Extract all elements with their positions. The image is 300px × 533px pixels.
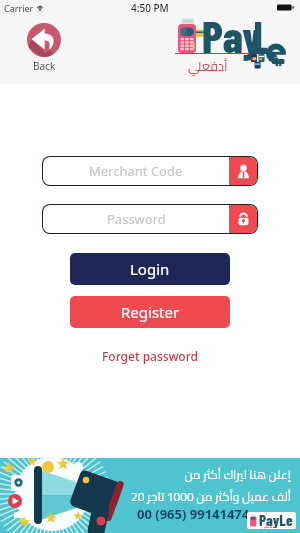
staticText: Pay [202, 9, 262, 62]
staticText: Back [33, 59, 56, 73]
button[interactable]: Forget password [96, 346, 204, 366]
staticText: أدفعلي [188, 54, 228, 78]
button[interactable]: Register [70, 296, 230, 328]
staticText: Carrier [4, 2, 34, 14]
staticText: 20 ألف عميل وأكثر من 1000 تاجر [131, 485, 291, 507]
button[interactable]: Login [70, 253, 230, 285]
button[interactable]: Advertisement banner [0, 458, 300, 533]
staticText: أدفعلي [261, 521, 277, 529]
staticText: 4:50 PM [131, 1, 169, 15]
staticText: Password [107, 210, 166, 228]
button[interactable]: Password [42, 204, 259, 235]
staticText: Register [121, 302, 180, 322]
staticText: 00 (965) 99141474 [137, 505, 250, 523]
staticText: Forget password [102, 348, 198, 364]
staticText: إعلن هنا ليراك أكثر من [184, 463, 291, 485]
staticText: Merchant Code [89, 162, 183, 180]
button[interactable]: Merchant Code [42, 156, 259, 187]
button[interactable]: Back [22, 21, 66, 75]
staticText: PayLe [259, 512, 293, 528]
staticText: Login [130, 259, 170, 279]
